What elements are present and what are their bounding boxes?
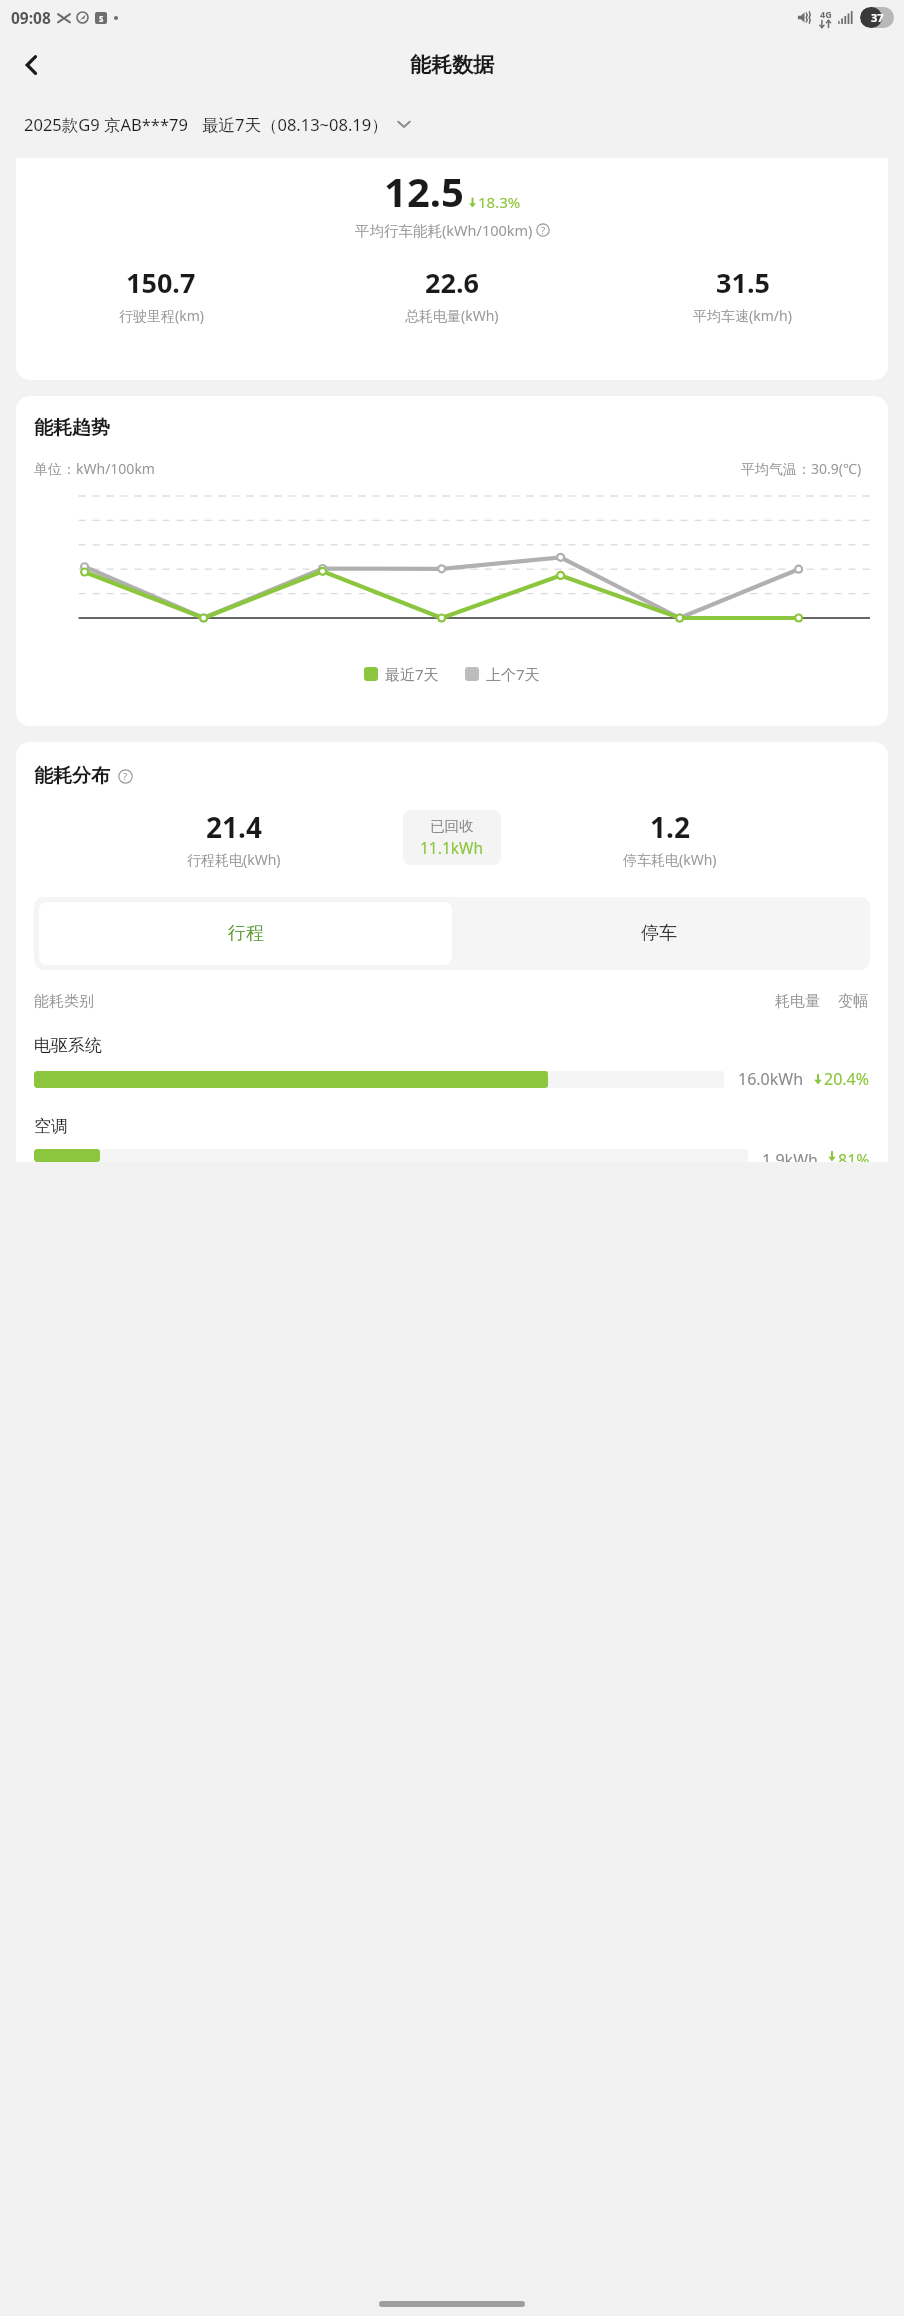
staticText: ? xyxy=(541,224,546,237)
staticText: 2025款G9 京AB***79 xyxy=(24,113,188,136)
staticText: 耗电量 xyxy=(775,992,820,1011)
staticText: 4G xyxy=(820,8,832,20)
button[interactable]: 最近7天 xyxy=(364,664,439,684)
staticText: 变幅 xyxy=(838,992,868,1011)
staticText: 能耗分布 xyxy=(34,764,110,788)
staticText: 最近7天（08.13~08.19） xyxy=(202,113,388,136)
staticText: 20.4% xyxy=(824,1068,870,1090)
staticText: 停车 xyxy=(641,922,677,945)
button[interactable]: 停车 xyxy=(452,902,865,965)
staticText: 行驶里程(km) xyxy=(119,306,204,325)
staticText: ? xyxy=(123,770,128,783)
staticText: 1.9kWh xyxy=(762,1149,818,1162)
staticText: 电驱系统 xyxy=(34,1035,102,1056)
staticText: 平均车速(km/h) xyxy=(693,306,792,325)
staticText: 最近7天 xyxy=(385,664,439,684)
button[interactable]: 上个7天 xyxy=(465,664,540,684)
staticText: 18.3% xyxy=(478,192,521,212)
staticText: 上个7天 xyxy=(486,664,540,684)
staticText: 12.5 xyxy=(384,164,464,218)
staticText: 37 xyxy=(871,10,884,25)
staticText: 空调 xyxy=(34,1116,68,1137)
staticText: 21.4 xyxy=(206,808,262,846)
staticText: 平均气温：30.9(℃) xyxy=(741,459,862,478)
staticText: 16.0kWh xyxy=(738,1068,804,1090)
staticText: 行程 xyxy=(228,922,264,945)
staticText: 行程耗电(kWh) xyxy=(187,850,281,869)
staticText: 单位：kWh/100km xyxy=(34,459,155,478)
staticText: 09:08 xyxy=(11,7,51,28)
staticText: 能耗趋势 xyxy=(34,416,110,440)
button[interactable]: 2025款G9 京AB***79 xyxy=(0,96,904,152)
staticText: 能耗数据 xyxy=(410,52,494,78)
button[interactable]: Back xyxy=(8,41,56,89)
button[interactable]: 电驱系统 xyxy=(16,1035,888,1090)
staticText: 150.7 xyxy=(126,264,196,301)
staticText: 11.1kWh xyxy=(420,837,484,858)
staticText: 平均行车能耗(kWh/100km) xyxy=(355,220,533,240)
staticText: 81% xyxy=(838,1149,870,1162)
staticText: 停车耗电(kWh) xyxy=(623,850,717,869)
button[interactable]: 行程 xyxy=(39,902,452,965)
staticText: 总耗电量(kWh) xyxy=(405,306,499,325)
staticText: S xyxy=(99,13,104,24)
staticText: 1.2 xyxy=(650,808,690,846)
staticText: 22.6 xyxy=(425,264,479,301)
button[interactable]: 空调 xyxy=(16,1116,888,1162)
staticText: 31.5 xyxy=(716,264,770,301)
staticText: 已回收 xyxy=(430,817,474,835)
staticText: 能耗类别 xyxy=(34,992,94,1011)
